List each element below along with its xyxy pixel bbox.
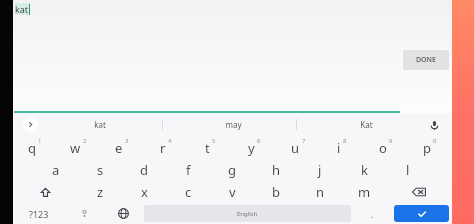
staticText: kat <box>94 119 106 130</box>
staticText: m <box>358 183 371 201</box>
staticText: f <box>186 161 191 179</box>
staticText: 4 <box>168 137 172 145</box>
staticText: a <box>52 161 60 179</box>
button[interactable]: t <box>188 136 232 159</box>
button[interactable]: d <box>122 159 166 181</box>
staticText: l <box>406 161 410 179</box>
button[interactable]: f <box>166 159 210 181</box>
button[interactable]: DONE <box>403 50 449 70</box>
staticText: p <box>423 139 431 157</box>
button[interactable]: i <box>320 136 364 159</box>
button[interactable]: c <box>166 181 210 203</box>
staticText: w <box>70 139 81 157</box>
staticText: Kat <box>360 119 373 130</box>
button[interactable]: More suggestions <box>23 117 38 132</box>
staticText: j <box>318 161 322 179</box>
button[interactable]: y <box>232 136 276 159</box>
staticText: c <box>185 183 192 201</box>
button[interactable]: Kat <box>318 113 414 136</box>
button[interactable]: g <box>210 159 254 181</box>
button[interactable]: kat <box>15 3 30 15</box>
button[interactable]: e <box>100 136 144 159</box>
staticText: t <box>205 139 210 157</box>
staticText: ?123 <box>29 208 49 220</box>
button[interactable]: English <box>144 205 351 222</box>
button[interactable]: k <box>342 159 386 181</box>
staticText: x <box>141 183 148 201</box>
button[interactable]: Backspace <box>386 181 452 203</box>
staticText: u <box>291 139 300 157</box>
staticText: 7 <box>302 137 306 145</box>
staticText: o <box>379 139 387 157</box>
staticText: s <box>97 161 104 179</box>
staticText: 3 <box>125 137 129 145</box>
staticText: 8 <box>343 137 347 145</box>
button[interactable]: a <box>34 159 78 181</box>
button[interactable]: r <box>144 136 188 159</box>
button[interactable]: Enter <box>394 205 449 222</box>
staticText: i <box>337 139 341 157</box>
staticText: r <box>160 139 166 157</box>
button[interactable]: q <box>13 136 56 159</box>
button[interactable]: n <box>298 181 342 203</box>
button[interactable]: . <box>353 203 391 224</box>
button[interactable]: w <box>56 136 100 159</box>
staticText: 5 <box>212 137 216 145</box>
staticText: 2 <box>83 137 87 145</box>
button[interactable]: kat <box>52 113 148 136</box>
button[interactable]: Voice input <box>423 114 445 136</box>
button[interactable]: v <box>210 181 254 203</box>
staticText: h <box>272 161 281 179</box>
staticText: d <box>140 161 148 179</box>
button[interactable]: o <box>364 136 408 159</box>
button[interactable]: ?123 <box>13 203 65 224</box>
staticText: n <box>316 183 325 201</box>
button[interactable]: h <box>254 159 298 181</box>
button[interactable]: may <box>185 113 281 136</box>
staticText: may <box>225 119 242 130</box>
button[interactable]: Change language <box>104 203 142 224</box>
staticText: k <box>361 161 368 179</box>
button[interactable]: s <box>78 159 122 181</box>
staticText: . <box>371 208 374 220</box>
button[interactable]: b <box>254 181 298 203</box>
staticText: y <box>248 139 255 157</box>
staticText: q <box>28 139 36 157</box>
button[interactable]: Comma <box>65 203 104 224</box>
staticText: e <box>115 139 123 157</box>
button[interactable]: l <box>386 159 430 181</box>
button[interactable]: u <box>276 136 320 159</box>
button[interactable]: p <box>408 136 452 159</box>
button[interactable]: Shift <box>13 181 78 203</box>
staticText: g <box>228 161 236 179</box>
staticText: kat <box>15 3 29 15</box>
staticText: b <box>272 183 280 201</box>
staticText: v <box>229 183 236 201</box>
button[interactable]: j <box>298 159 342 181</box>
staticText: 0 <box>433 137 437 145</box>
staticText: 6 <box>257 137 261 145</box>
staticText: 1 <box>38 137 42 145</box>
button[interactable]: x <box>122 181 166 203</box>
staticText: 9 <box>389 137 393 145</box>
button[interactable]: z <box>78 181 122 203</box>
staticText: DONE <box>416 55 436 65</box>
staticText: z <box>97 183 104 201</box>
staticText: English <box>237 210 258 218</box>
button[interactable]: m <box>342 181 386 203</box>
